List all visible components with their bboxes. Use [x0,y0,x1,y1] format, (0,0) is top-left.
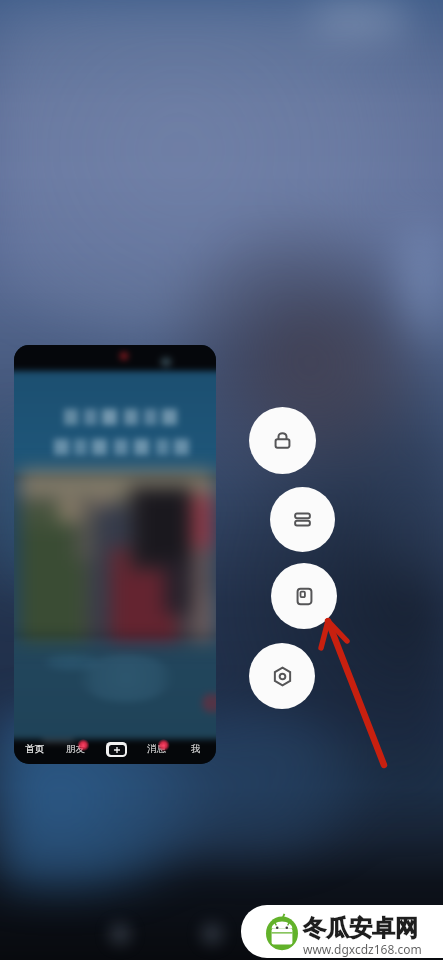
staticText: www.dgxcdz168.com [303,941,422,957]
staticText: 冬瓜安卓网 [303,914,418,943]
staticText: 我 [191,743,201,755]
button[interactable]: App info [249,643,315,709]
button[interactable]: Split screen [270,487,335,552]
staticText: 首页 [25,743,44,755]
other: dgxcdz168.com [262,911,302,951]
button[interactable]: Lock app [249,407,316,474]
button[interactable]: 消息 [136,737,176,761]
button[interactable]: 首页 [14,345,216,764]
button[interactable]: dgxcdz168.com [241,905,443,958]
button[interactable]: Create post [106,742,127,757]
button[interactable]: 我 [176,737,216,761]
staticText: 朋友 [66,743,85,755]
button[interactable]: 首页 [14,737,55,761]
button[interactable]: 朋友 [55,737,96,761]
staticText: 消息 [147,743,166,755]
button[interactable]: Floating window [271,563,337,629]
